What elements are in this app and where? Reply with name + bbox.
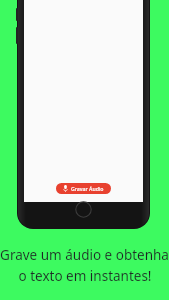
other: Home [75, 201, 92, 218]
staticText: Gravar Áudio [71, 185, 104, 192]
staticText: o texto em instantes! [18, 267, 152, 285]
button[interactable]: Gravar Áudio [56, 183, 111, 194]
staticText: Grave um áudio e obtenha [0, 246, 169, 264]
